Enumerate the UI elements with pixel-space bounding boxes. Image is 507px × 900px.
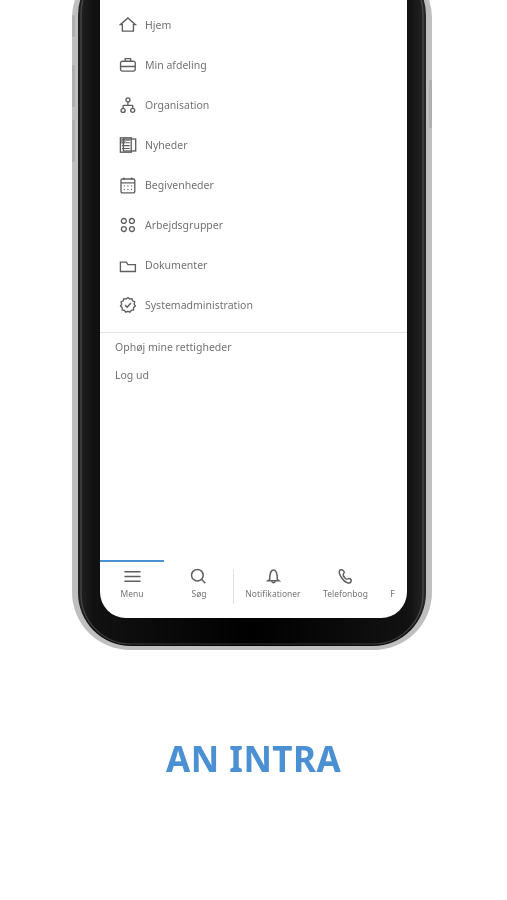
- staticText: Hjem: [145, 18, 172, 32]
- button[interactable]: Organisation: [100, 85, 407, 125]
- staticText: Dokumenter: [145, 258, 208, 272]
- button[interactable]: F: [378, 560, 407, 614]
- staticText: Begivenheder: [145, 178, 214, 192]
- button[interactable]: Hjem: [100, 5, 407, 45]
- button[interactable]: Ophøj mine rettigheder: [100, 333, 407, 361]
- staticText: Systemadministration: [145, 298, 253, 312]
- staticText: AN INTRA: [166, 735, 342, 783]
- staticText: Notifikationer: [245, 588, 301, 600]
- staticText: Ophøj mine rettigheder: [115, 340, 232, 354]
- button[interactable]: Arbejdsgrupper: [100, 205, 407, 245]
- button[interactable]: Telefonbog: [312, 560, 378, 614]
- staticText: Menu: [120, 588, 144, 600]
- button[interactable]: Søg: [164, 560, 233, 614]
- staticText: Log ud: [115, 368, 149, 382]
- staticText: Søg: [191, 588, 207, 600]
- staticText: Organisation: [145, 98, 210, 112]
- button[interactable]: Nyheder: [100, 125, 407, 165]
- button[interactable]: Systemadministration: [100, 285, 407, 325]
- button[interactable]: Dokumenter: [100, 245, 407, 285]
- button[interactable]: Menu: [100, 560, 164, 614]
- staticText: Min afdeling: [145, 58, 207, 72]
- button[interactable]: Log ud: [100, 361, 407, 389]
- button[interactable]: Min afdeling: [100, 45, 407, 85]
- staticText: Nyheder: [145, 138, 188, 152]
- staticText: Telefonbog: [323, 588, 368, 600]
- button[interactable]: Begivenheder: [100, 165, 407, 205]
- button[interactable]: Notifikationer: [234, 560, 312, 614]
- staticText: F: [390, 588, 395, 600]
- staticText: Arbejdsgrupper: [145, 218, 224, 232]
